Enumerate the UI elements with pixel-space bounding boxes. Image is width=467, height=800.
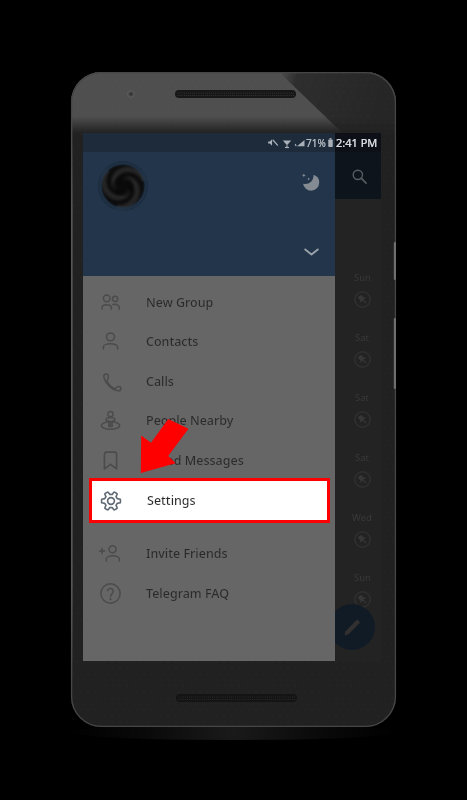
staticText: Contacts (146, 333, 199, 350)
button[interactable]: Night mode (295, 166, 325, 196)
button[interactable]: New Group (83, 282, 335, 322)
button[interactable]: Sun (83, 562, 381, 622)
button[interactable]: Invite Friends (83, 533, 335, 573)
staticText: People Nearby (146, 412, 234, 429)
button[interactable] (98, 161, 148, 211)
staticText: Sat (355, 331, 369, 344)
staticText: New Group (146, 294, 214, 311)
button[interactable]: Settings (92, 481, 327, 520)
button[interactable]: Sat (83, 322, 381, 382)
staticText: 2:41 PM (336, 135, 378, 150)
button[interactable]: Contacts (83, 321, 335, 361)
staticText: Calls (146, 373, 174, 390)
staticText: Sun (354, 271, 371, 284)
staticText: Sat (355, 391, 369, 404)
button[interactable]: Calls (83, 361, 335, 401)
button[interactable] (83, 199, 381, 262)
button[interactable]: Wed (83, 502, 381, 562)
button[interactable]: Sat (83, 382, 381, 442)
staticText: Sat (355, 451, 369, 464)
button[interactable]: People Nearby (83, 400, 335, 440)
button[interactable]: New message (329, 604, 375, 650)
button[interactable]: Saved Messages (83, 440, 335, 480)
button[interactable]: Telegram FAQ (83, 573, 335, 613)
button[interactable]: Search (345, 162, 373, 190)
staticText: Wed (352, 511, 372, 524)
staticText: Sun (354, 571, 371, 584)
staticText: Telegram FAQ (146, 585, 229, 602)
button[interactable]: Expand accounts (298, 238, 324, 264)
staticText: Settings (147, 492, 196, 509)
staticText: 71% (306, 136, 326, 150)
button[interactable]: Sun (83, 262, 381, 322)
staticText: Invite Friends (146, 545, 228, 562)
button[interactable]: Sat (83, 442, 381, 502)
staticText: Saved Messages (146, 452, 244, 469)
